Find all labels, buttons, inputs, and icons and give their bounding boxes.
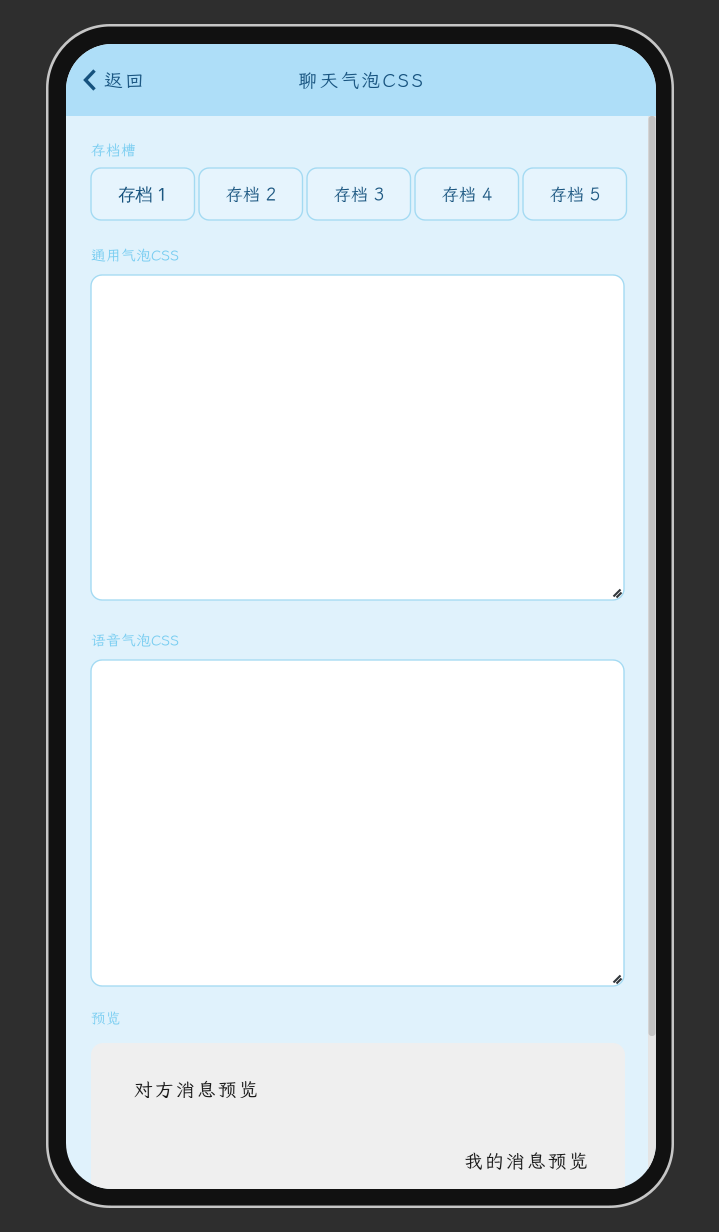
staticText: 存档 5 — [550, 183, 600, 205]
staticText: 存档 3 — [334, 183, 384, 205]
staticText: 预览 — [91, 1008, 121, 1028]
button[interactable]: 存档 2 — [199, 168, 302, 220]
staticText: 语音气泡CSS — [91, 630, 179, 650]
staticText: 存档 2 — [226, 183, 276, 205]
staticText: 存档 1 — [118, 182, 167, 206]
staticText: 存档槽 — [91, 140, 136, 160]
button[interactable]: 返 回 — [66, 55, 160, 105]
button[interactable]: 存档 1 — [91, 168, 194, 220]
button[interactable]: 存档 4 — [415, 168, 518, 220]
staticText: 聊 天 气 泡 C S S — [298, 68, 423, 92]
staticText: 存档 4 — [442, 183, 492, 205]
staticText: 对 方 消 息 预 览 — [134, 1077, 258, 1102]
staticText: 返 回 — [104, 68, 144, 92]
button[interactable]: 存档 5 — [523, 168, 626, 220]
staticText: 我 的 消 息 预 览 — [464, 1149, 588, 1173]
button[interactable]: 存档 3 — [307, 168, 410, 220]
staticText: 通用气泡CSS — [91, 245, 179, 265]
